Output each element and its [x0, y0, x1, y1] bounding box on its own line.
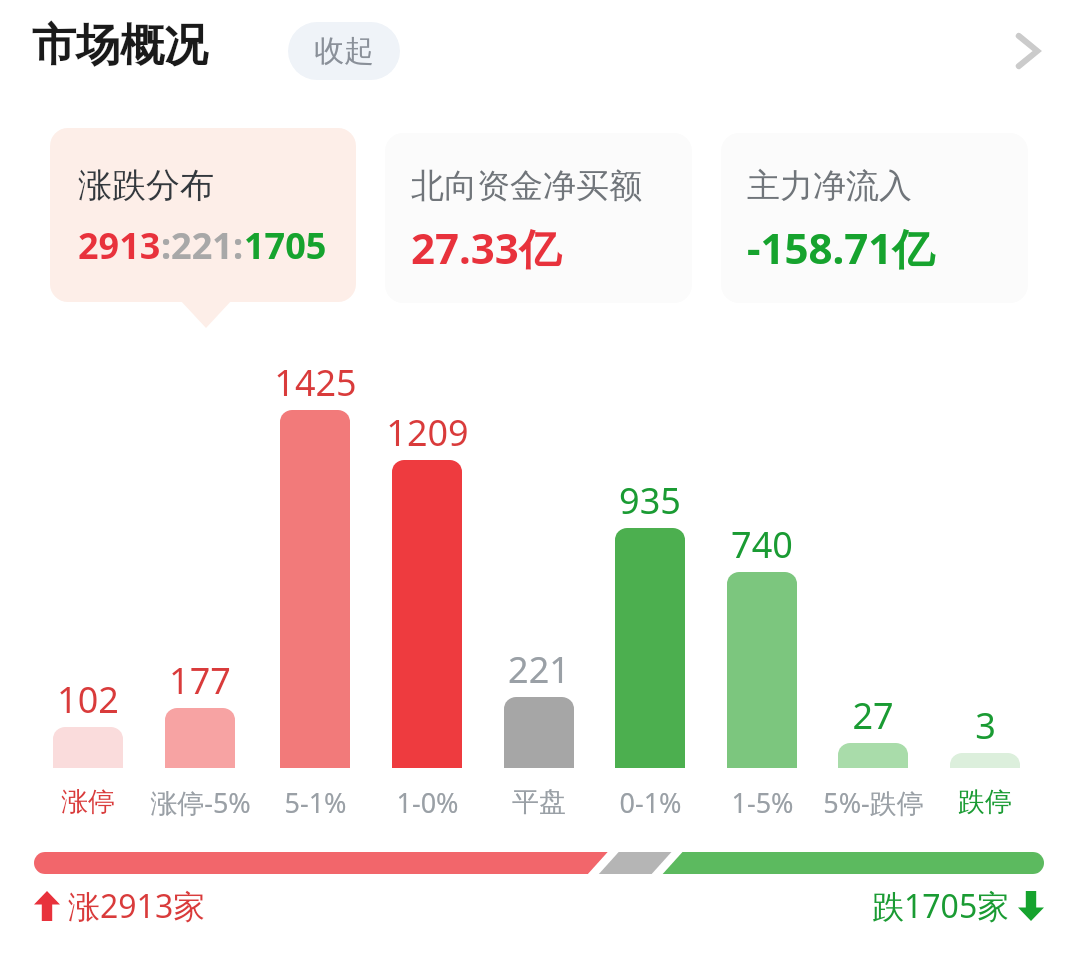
staticText: 1705 — [244, 221, 327, 270]
staticText: 5-1% — [284, 784, 347, 821]
button[interactable] — [504, 697, 574, 768]
staticText: 1425 — [274, 358, 357, 406]
button[interactable]: 主力净流入 — [721, 133, 1028, 303]
staticText: 27.33亿 — [411, 219, 561, 276]
staticText: 221 — [508, 645, 570, 693]
staticText: 跌停 — [958, 785, 1012, 819]
staticText: 177 — [169, 656, 231, 704]
button[interactable] — [615, 528, 685, 768]
staticText: 1-0% — [396, 784, 459, 821]
button[interactable] — [727, 572, 797, 768]
staticText: :221: — [161, 221, 244, 270]
staticText: 涨停 — [61, 785, 115, 819]
button[interactable]: 收起 — [288, 22, 400, 80]
button[interactable] — [280, 410, 350, 768]
staticText: 涨停-5% — [150, 784, 251, 821]
staticText: 1209 — [386, 408, 469, 456]
staticText: 主力净流入 — [747, 165, 912, 207]
staticText: 北向资金净买额 — [411, 165, 642, 207]
staticText: 935 — [619, 476, 681, 524]
staticText: 27 — [852, 691, 894, 739]
staticText: 740 — [731, 520, 793, 568]
staticText: 2913 — [78, 221, 161, 270]
staticText: 涨2913家 — [68, 884, 206, 928]
button[interactable] — [838, 743, 908, 768]
staticText: 1-5% — [731, 784, 794, 821]
button[interactable] — [53, 727, 123, 768]
button[interactable] — [165, 708, 235, 768]
staticText: -158.71亿 — [747, 219, 935, 276]
button[interactable]: 涨跌分布 — [50, 128, 356, 302]
staticText: 3 — [975, 701, 996, 749]
staticText: 涨跌分布 — [78, 164, 214, 207]
button[interactable]: 北向资金净买额 — [385, 133, 692, 303]
button[interactable] — [392, 460, 462, 768]
staticText: 平盘 — [512, 785, 566, 819]
button[interactable] — [950, 753, 1020, 768]
button[interactable]: More — [995, 18, 1061, 84]
staticText: 收起 — [314, 32, 374, 70]
staticText: 102 — [57, 675, 119, 723]
staticText: 0-1% — [619, 784, 682, 821]
staticText: 5%-跌停 — [823, 784, 924, 821]
staticText: 市场概况 — [32, 18, 208, 73]
staticText: 跌1705家 — [872, 884, 1010, 928]
